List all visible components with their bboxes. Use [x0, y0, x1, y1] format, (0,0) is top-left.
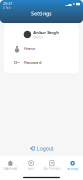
button[interactable]: Ankur Singh [4, 27, 79, 41]
staticText: Home [24, 46, 35, 51]
staticText: 20:37 [3, 1, 12, 6]
button[interactable]: Fuel [21, 157, 42, 173]
staticText: Settings [31, 10, 52, 17]
staticText: Dashboard [3, 167, 17, 170]
staticText: Logout [36, 145, 53, 152]
staticText: Settings [67, 167, 78, 170]
button[interactable]: Password [4, 55, 79, 69]
staticText: ▂▄ [66, 2, 72, 6]
staticText: Password [24, 60, 41, 65]
staticText: Ankur Singh [33, 30, 59, 35]
staticText: ▼ [73, 3, 75, 6]
button[interactable]: Settings [62, 157, 83, 173]
button[interactable]: Logout [26, 143, 57, 154]
staticText: Our Policies [43, 167, 60, 170]
staticText: Online [33, 36, 43, 39]
button[interactable]: Our Policies [41, 157, 62, 173]
staticText: Fuel [28, 167, 34, 170]
staticText: 4 Feb [3, 6, 11, 10]
button[interactable]: Home [4, 41, 79, 55]
button[interactable]: Dashboard [0, 157, 21, 173]
